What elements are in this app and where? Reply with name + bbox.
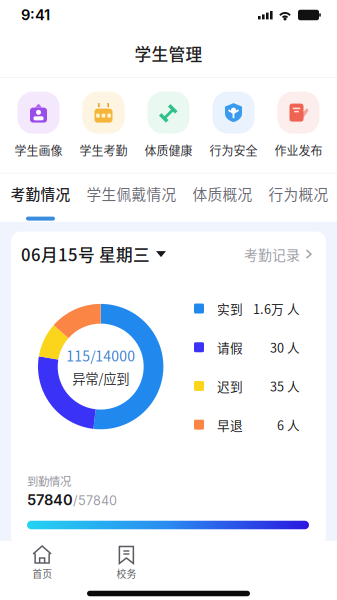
staticText: 57840 — [27, 491, 73, 509]
staticText: 1.6万 人 — [253, 299, 300, 318]
staticText: 体质健康 — [144, 142, 192, 159]
staticText: 30 人 — [270, 338, 300, 356]
staticText: 实到 — [217, 299, 243, 318]
staticText: 请假 — [217, 338, 243, 356]
staticText: 异常/应到 — [72, 369, 129, 388]
staticText: 行为安全 — [209, 142, 257, 159]
staticText: 6 人 — [277, 415, 300, 434]
staticText: 首页 — [32, 566, 52, 581]
button[interactable]: 首页 — [0, 541, 84, 582]
staticText: 考勤情况 — [10, 183, 70, 204]
staticText: 迟到 — [217, 377, 243, 395]
staticText: 学生考勤 — [79, 142, 127, 159]
button[interactable]: 体质健康 — [136, 92, 201, 159]
staticText: 学生画像 — [14, 142, 62, 159]
staticText: 9:41 — [21, 6, 50, 24]
staticText: 学生佩戴情况 — [86, 183, 176, 204]
button[interactable]: 行为安全 — [201, 92, 266, 159]
button[interactable]: 校务 — [84, 541, 168, 582]
staticText: 学生管理 — [134, 41, 202, 65]
staticText: 早退 — [217, 415, 243, 434]
button[interactable]: 学生画像 — [6, 92, 71, 159]
button[interactable]: 作业发布 — [266, 92, 331, 159]
staticText: 115/14000 — [66, 345, 135, 366]
button[interactable]: 考勤情况 — [10, 174, 70, 222]
staticText: 行为概况 — [268, 183, 328, 204]
staticText: 35 人 — [270, 377, 300, 395]
button[interactable]: 行为概况 — [268, 174, 328, 222]
button[interactable]: 考勤记录 — [244, 244, 313, 264]
staticText: 作业发布 — [274, 142, 322, 159]
button[interactable]: 学生佩戴情况 — [86, 174, 176, 222]
staticText: 考勤记录 — [244, 244, 300, 264]
staticText: /57840 — [73, 493, 117, 508]
staticText: 校务 — [116, 566, 136, 581]
button[interactable]: 体质概况 — [192, 174, 252, 222]
staticText: 06月15号 星期三 — [21, 242, 150, 266]
staticText: 体质概况 — [192, 183, 252, 204]
button[interactable]: 学生考勤 — [71, 92, 136, 159]
staticText: 到勤情况 — [27, 473, 71, 489]
